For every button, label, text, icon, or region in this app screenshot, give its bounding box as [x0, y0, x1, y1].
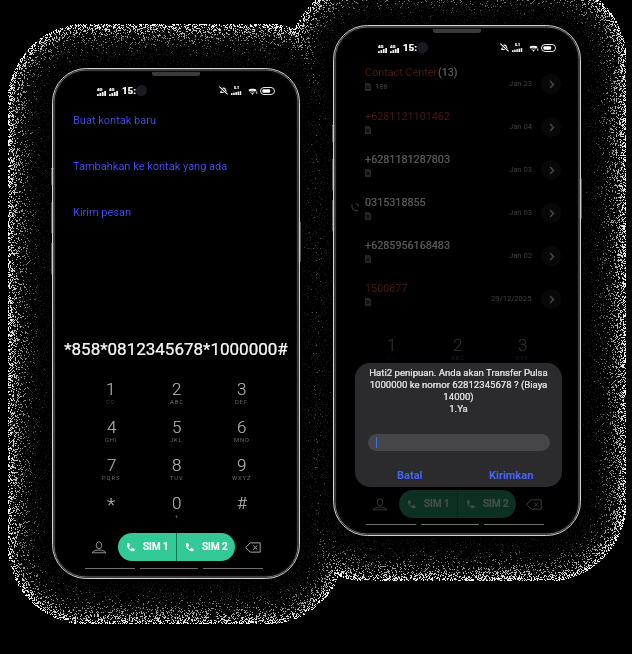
button[interactable]: Kirim pesan — [56, 202, 296, 223]
button[interactable]: Contacts — [87, 535, 111, 559]
button[interactable]: 4 — [359, 373, 425, 411]
button[interactable]: 0 — [144, 493, 209, 531]
button[interactable]: # — [209, 493, 274, 531]
staticText: PQRS — [102, 475, 121, 482]
staticText: Jan 03 — [509, 165, 532, 174]
button[interactable]: 2 — [425, 335, 490, 373]
staticText: Batal — [397, 469, 423, 482]
button[interactable]: Buat kontak baru — [56, 110, 296, 131]
staticText: Kirimkan — [489, 469, 534, 482]
staticText: 1 — [106, 379, 116, 399]
button[interactable]: 3 — [209, 379, 274, 417]
button[interactable] — [203, 563, 263, 573]
button[interactable]: 0315318855 — [337, 189, 577, 232]
button[interactable]: 7 — [78, 455, 144, 493]
staticText: 4 — [388, 373, 398, 393]
button[interactable] — [140, 563, 198, 573]
button[interactable]: 5 — [425, 373, 490, 411]
staticText: 188 — [375, 82, 388, 91]
button[interactable]: 1500877 — [337, 275, 577, 318]
staticText: 4G — [378, 44, 384, 49]
button[interactable] — [368, 434, 550, 451]
button[interactable]: SIM 1 — [118, 533, 176, 561]
staticText: 8 — [172, 455, 182, 475]
button[interactable]: Call details — [541, 246, 561, 266]
button[interactable]: 6 — [209, 417, 274, 455]
button[interactable]: Call details — [541, 117, 561, 137]
staticText: 3 — [237, 379, 247, 399]
staticText: 5.1 — [515, 43, 521, 47]
staticText: 4G — [97, 87, 103, 92]
button[interactable]: Call details — [541, 203, 561, 223]
button[interactable]: * — [78, 493, 144, 531]
staticText: +6281181287803 — [365, 153, 451, 166]
staticText: 5 — [453, 373, 463, 393]
staticText: 0315318855 — [365, 196, 426, 209]
button[interactable]: 4 — [78, 417, 144, 455]
staticText: 6 — [237, 417, 247, 437]
button[interactable]: +6281181287803 — [337, 146, 577, 189]
staticText: + — [175, 513, 180, 520]
button[interactable]: Call details — [541, 160, 561, 180]
button[interactable] — [421, 519, 479, 529]
button[interactable]: 1 — [78, 379, 144, 417]
staticText: 15: — [403, 42, 418, 53]
button[interactable]: Contact Center — [337, 60, 577, 103]
staticText: MNO — [234, 437, 250, 444]
staticText: 7 — [107, 455, 117, 475]
button[interactable]: Contacts — [368, 492, 392, 516]
staticText: DEF — [516, 355, 530, 362]
staticText: 4G — [390, 44, 396, 49]
button[interactable]: +6281121101462 — [337, 103, 577, 146]
button[interactable]: Call details — [541, 74, 561, 94]
button[interactable]: Tambahkan ke kontak yang ada — [56, 156, 296, 177]
button[interactable]: Backspace — [241, 535, 265, 559]
staticText: Hati2 penipuan. Anda akan Transfer Pulsa… — [367, 367, 550, 414]
staticText: 0 — [172, 493, 182, 513]
staticText: ○○ — [106, 399, 116, 404]
staticText: Jan 23 — [509, 79, 532, 88]
staticText: 5 — [172, 417, 182, 437]
button[interactable]: Kirimkan — [483, 464, 540, 486]
staticText: 29/12/2025 — [491, 294, 532, 303]
staticText: SIM 1 — [143, 541, 169, 553]
staticText: +6285956168483 — [365, 239, 451, 252]
staticText: SIM 1 — [424, 498, 450, 510]
staticText: JKL — [451, 393, 464, 400]
button[interactable] — [85, 563, 135, 573]
button[interactable]: 8 — [144, 455, 209, 493]
button[interactable] — [484, 519, 544, 529]
button[interactable]: SIM 1 — [399, 490, 457, 518]
staticText: 1 — [387, 335, 397, 355]
staticText: *858*0812345678*1000000# — [64, 339, 288, 359]
button[interactable]: SIM 2 — [458, 490, 516, 518]
staticText: ABC — [170, 399, 184, 406]
staticText: (13) — [438, 66, 458, 79]
staticText: GHI — [105, 437, 118, 444]
staticText: Kirim pesan — [73, 206, 132, 219]
button[interactable]: SIM 2 — [177, 533, 235, 561]
staticText: DEF — [235, 399, 249, 406]
staticText: SIM 2 — [202, 541, 228, 553]
staticText: 4G — [109, 87, 115, 92]
button[interactable]: 3 — [490, 335, 555, 373]
staticText: JKL — [170, 437, 183, 444]
staticText: Jan 02 — [509, 251, 532, 260]
button[interactable]: +6285956168483 — [337, 232, 577, 275]
staticText: 6 — [518, 373, 528, 393]
button[interactable]: 2 — [144, 379, 209, 417]
staticText: 3 — [518, 335, 528, 355]
staticText: * — [107, 493, 116, 515]
button[interactable]: Call details — [541, 289, 561, 309]
button[interactable]: Backspace — [522, 492, 546, 516]
button[interactable]: 5 — [144, 417, 209, 455]
button[interactable]: 1 — [359, 335, 425, 373]
staticText: Buat kontak baru — [73, 114, 156, 127]
button[interactable] — [366, 519, 416, 529]
button[interactable]: 6 — [490, 373, 555, 411]
button[interactable]: 9 — [209, 455, 274, 493]
button[interactable]: Batal — [391, 464, 429, 486]
